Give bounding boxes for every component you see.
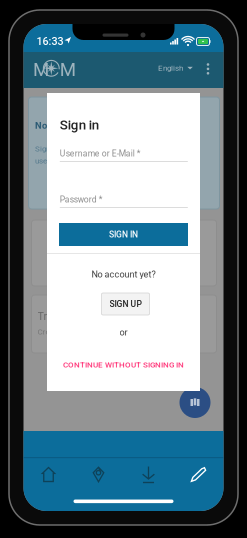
button[interactable]: Map layers: [179, 387, 210, 418]
button[interactable]: More options: [201, 57, 215, 81]
staticText: SIGN UP: [109, 299, 141, 309]
staticText: Tracks: [37, 310, 69, 322]
button[interactable]: Places: [73, 459, 123, 489]
staticText: or: [119, 327, 127, 338]
staticText: M: [33, 59, 49, 81]
button[interactable]: CONTINUE WITHOUT SIGNING IN: [47, 356, 200, 373]
staticText: No account yet?: [91, 269, 155, 280]
button[interactable]: Downloads: [123, 459, 173, 489]
staticText: Sign in: [60, 117, 99, 133]
staticText: SIGN IN: [109, 229, 138, 239]
staticText: Create a track: [37, 327, 86, 336]
button[interactable]: SIGN UP: [101, 293, 149, 315]
staticText: Password *: [60, 194, 103, 204]
staticText: Sign in to sync your data,: [35, 144, 124, 153]
staticText: use maps offline and more.: [35, 156, 130, 165]
staticText: Username or E-Mail *: [60, 148, 141, 158]
button[interactable]: Home: [23, 459, 73, 489]
button[interactable]: SIGN IN: [59, 223, 188, 246]
staticText: 16:33: [36, 35, 63, 47]
staticText: CONTINUE WITHOUT SIGNING IN: [63, 360, 184, 369]
staticText: M: [60, 59, 76, 81]
staticText: No account: [35, 120, 82, 131]
button[interactable]: English: [155, 56, 196, 80]
button[interactable]: Edit: [173, 459, 223, 489]
staticText: English: [158, 63, 183, 73]
